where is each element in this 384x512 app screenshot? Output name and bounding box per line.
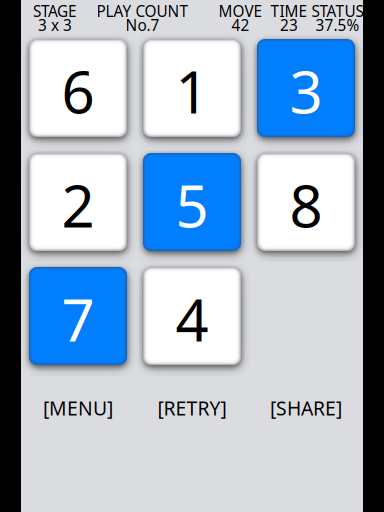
staticText: 8 bbox=[289, 165, 322, 244]
staticText: No.7 bbox=[125, 15, 159, 35]
staticText: [SHARE] bbox=[270, 395, 342, 421]
staticText: 3 x 3 bbox=[38, 15, 72, 35]
staticText: [MENU] bbox=[43, 395, 113, 421]
button[interactable]: 2 bbox=[29, 153, 127, 251]
staticText: 3 bbox=[289, 51, 322, 130]
staticText: 23 bbox=[280, 15, 298, 35]
button[interactable]: [SHARE] bbox=[257, 391, 355, 425]
staticText: 2 bbox=[61, 165, 94, 244]
staticText: 37.5% bbox=[315, 15, 359, 35]
button[interactable]: 4 bbox=[143, 267, 241, 365]
staticText: 42 bbox=[231, 15, 249, 35]
button[interactable]: 3 bbox=[257, 39, 355, 137]
staticText: 7 bbox=[61, 279, 94, 358]
staticText: 5 bbox=[175, 165, 208, 244]
staticText: STAGE bbox=[33, 1, 77, 21]
button[interactable]: 7 bbox=[29, 267, 127, 365]
button[interactable]: [RETRY] bbox=[143, 391, 241, 425]
staticText: 4 bbox=[175, 279, 208, 358]
staticText: MOVE bbox=[218, 1, 262, 21]
staticText: 6 bbox=[61, 51, 94, 130]
button[interactable]: 8 bbox=[257, 153, 355, 251]
button[interactable]: 5 bbox=[143, 153, 241, 251]
button[interactable]: [MENU] bbox=[29, 391, 127, 425]
staticText: STATUS bbox=[311, 1, 363, 21]
staticText: PLAY COUNT bbox=[96, 1, 188, 21]
staticText: [RETRY] bbox=[157, 395, 226, 421]
button[interactable]: 6 bbox=[29, 39, 127, 137]
staticText: TIME bbox=[270, 1, 307, 21]
button[interactable]: 1 bbox=[143, 39, 241, 137]
staticText: 1 bbox=[175, 51, 208, 130]
